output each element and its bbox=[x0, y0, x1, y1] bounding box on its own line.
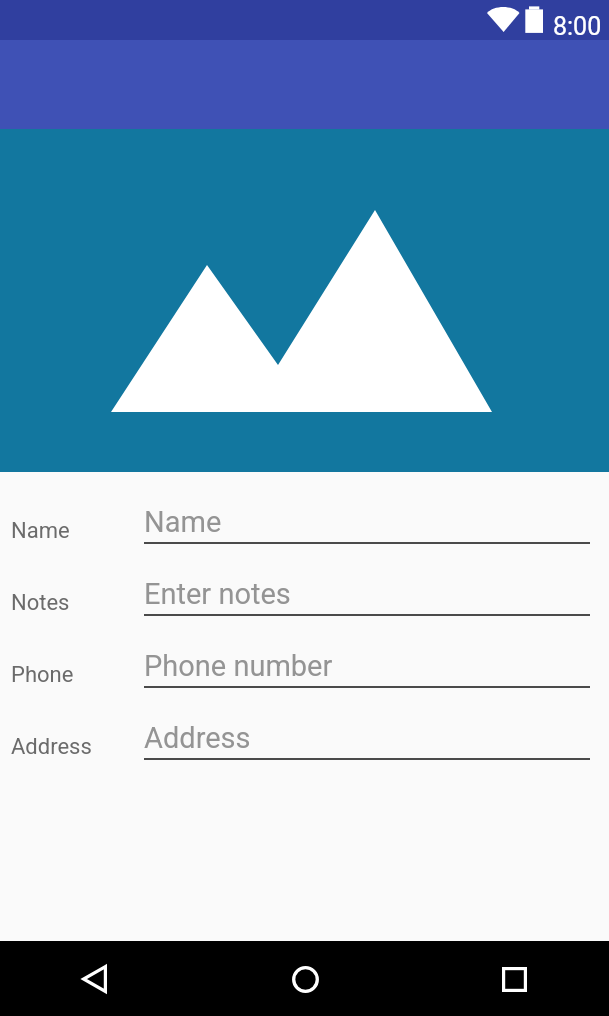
staticText: Phone bbox=[11, 662, 74, 688]
staticText: Name bbox=[144, 505, 222, 539]
button[interactable]: Add photo bbox=[0, 129, 609, 472]
button[interactable]: Recent apps bbox=[479, 944, 549, 1014]
button[interactable]: Back bbox=[59, 944, 129, 1014]
staticText: Enter notes bbox=[144, 577, 291, 611]
button[interactable]: Home bbox=[270, 944, 340, 1014]
button[interactable]: Notes bbox=[0, 544, 609, 616]
staticText: 8:00 bbox=[553, 12, 602, 41]
staticText: Address bbox=[11, 734, 92, 760]
staticText: Name bbox=[11, 518, 70, 544]
staticText: Phone number bbox=[144, 649, 333, 683]
button[interactable]: Name bbox=[0, 472, 609, 544]
button[interactable]: Phone bbox=[0, 616, 609, 688]
staticText: Notes bbox=[11, 590, 70, 616]
button[interactable]: Address bbox=[0, 688, 609, 760]
staticText: Address bbox=[144, 721, 251, 755]
